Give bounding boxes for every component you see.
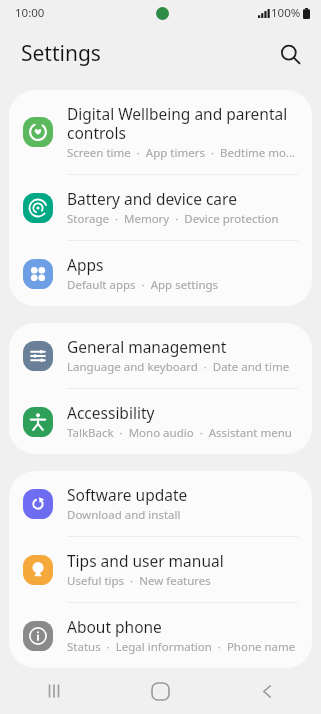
staticText: General management	[67, 336, 227, 357]
staticText: Apps	[67, 254, 104, 275]
button[interactable]: Digital Wellbeing and parental controls	[9, 90, 312, 174]
staticText: Storage · Memory · Device protection	[67, 211, 279, 227]
staticText: Software update	[67, 484, 188, 505]
staticText: Digital Wellbeing and parental controls	[67, 103, 296, 143]
staticText: Status · Legal information · Phone name	[67, 639, 296, 655]
button[interactable]: About phone	[9, 603, 312, 668]
button[interactable]: Home	[107, 668, 214, 714]
staticText: TalkBack · Mono audio · Assistant menu	[67, 425, 292, 441]
button[interactable]: Battery and device care	[9, 175, 312, 240]
staticText: Screen time · App timers · Bedtime mode	[67, 145, 296, 161]
staticText: Settings	[21, 39, 101, 68]
staticText: Default apps · App settings	[67, 277, 219, 293]
button[interactable]: Accessibility	[9, 389, 312, 454]
staticText: Download and install	[67, 507, 181, 523]
button[interactable]: General management	[9, 323, 312, 388]
staticText: Battery and device care	[67, 188, 237, 209]
button[interactable]: Search	[269, 33, 311, 75]
staticText: Useful tips · New features	[67, 573, 211, 589]
staticText: 100%	[271, 5, 301, 21]
button[interactable]: Recent apps	[0, 668, 107, 714]
staticText: Language and keyboard · Date and time	[67, 359, 290, 375]
staticText: About phone	[67, 616, 162, 637]
button[interactable]: Back	[214, 668, 321, 714]
staticText: Accessibility	[67, 402, 155, 423]
staticText: Tips and user manual	[67, 550, 224, 571]
button[interactable]: Software update	[9, 471, 312, 536]
staticText: 10:00	[15, 5, 45, 21]
button[interactable]: Tips and user manual	[9, 537, 312, 602]
button[interactable]: Apps	[9, 241, 312, 306]
